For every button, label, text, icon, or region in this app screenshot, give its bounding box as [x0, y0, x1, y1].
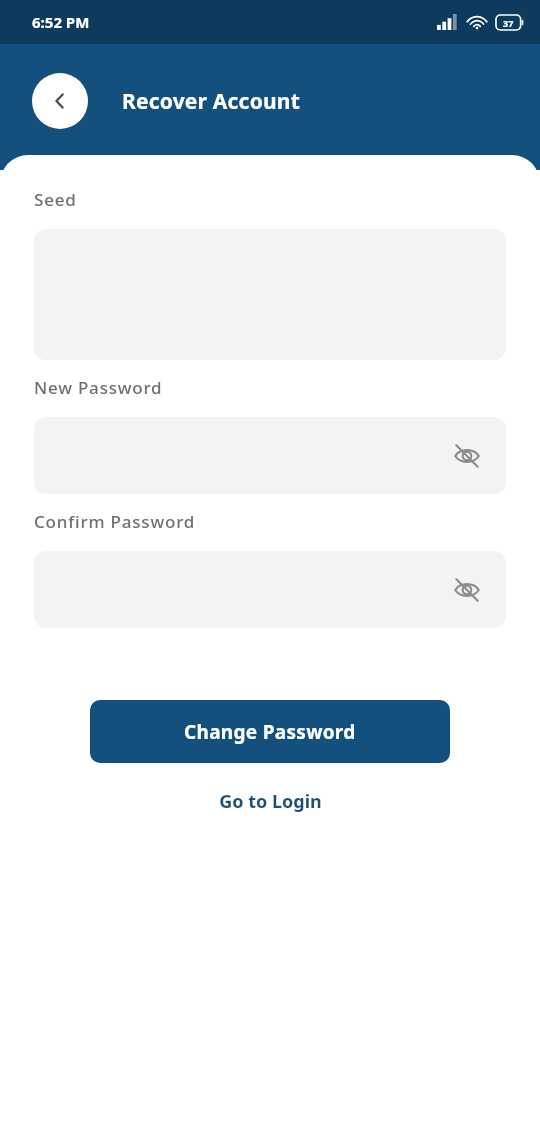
staticText: Change Password [184, 719, 356, 745]
staticText: 6:52 PM [32, 12, 90, 32]
staticText: 37 [503, 17, 514, 29]
button[interactable]: Back [32, 73, 88, 129]
button[interactable]: Toggle password visibility [34, 551, 506, 628]
staticText: Confirm Password [34, 510, 196, 533]
staticText: Recover Account [122, 87, 300, 116]
button[interactable]: Go to Login [205, 784, 336, 819]
staticText: Seed [34, 188, 77, 211]
button[interactable]: Toggle password visibility [444, 567, 490, 613]
staticText: Go to Login [219, 789, 322, 814]
button[interactable]: Change Password [90, 700, 450, 763]
button[interactable]: Toggle password visibility [444, 433, 490, 479]
button[interactable]: Toggle password visibility [34, 417, 506, 494]
staticText: New Password [34, 376, 163, 399]
